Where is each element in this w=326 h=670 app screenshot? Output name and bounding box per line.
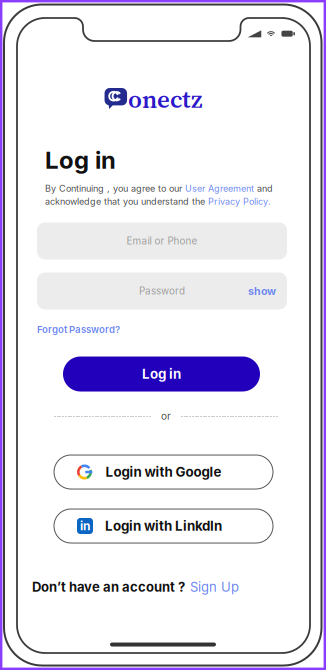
button[interactable]: Forgot Password? <box>37 324 157 335</box>
staticText: Email or Phone <box>126 235 197 247</box>
staticText: Password <box>139 285 185 297</box>
button[interactable]: Log in <box>63 356 260 391</box>
staticText: or <box>161 410 171 422</box>
staticText: User Agreement <box>185 183 254 194</box>
staticText: Don’t have an account ? <box>32 579 185 595</box>
staticText: show <box>248 284 276 297</box>
button[interactable]: Login with Google <box>54 455 273 489</box>
staticText: Login with LinkdIn <box>105 518 222 534</box>
button[interactable]: in <box>54 509 273 543</box>
staticText: Forgot Password? <box>37 324 120 335</box>
staticText: Log in <box>142 366 181 382</box>
button[interactable]: show <box>248 284 276 297</box>
staticText: onectz <box>128 82 203 116</box>
staticText: Sign Up <box>190 579 239 595</box>
staticText: By Continuing , you agree to our <box>45 183 185 194</box>
staticText: Privacy Policy. <box>208 196 271 207</box>
staticText: Login with Google <box>105 464 221 480</box>
button[interactable]: Sign Up <box>190 579 239 595</box>
staticText: Log in <box>45 145 116 174</box>
staticText: in <box>80 519 90 533</box>
staticText: acknowledge that you understand the <box>45 196 208 207</box>
staticText: and <box>254 183 273 194</box>
